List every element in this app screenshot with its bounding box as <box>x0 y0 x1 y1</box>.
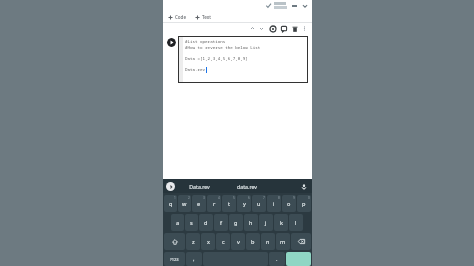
staticText: 7 <box>263 196 265 200</box>
staticText: 8 <box>278 196 280 200</box>
button[interactable]: 0 <box>297 195 311 212</box>
staticText: a <box>176 219 180 227</box>
staticText: y <box>243 200 246 208</box>
staticText: g <box>234 219 238 227</box>
button[interactable]: l <box>289 214 303 231</box>
button[interactable]: a <box>171 214 184 231</box>
button[interactable]: 9 <box>282 195 296 212</box>
button[interactable]: Delete cell <box>290 24 299 33</box>
button[interactable]: Text <box>194 13 212 21</box>
staticText: data.rev <box>237 183 257 190</box>
button[interactable]: f <box>214 214 228 231</box>
staticText: z <box>192 238 195 246</box>
staticText: 1 <box>174 196 176 200</box>
button[interactable]: v <box>231 233 245 250</box>
button[interactable]: Voice input <box>298 181 309 192</box>
staticText: v <box>237 238 240 246</box>
button[interactable]: Move cell down <box>257 24 266 33</box>
staticText: k <box>280 219 283 227</box>
button[interactable]: m <box>276 233 290 250</box>
staticText: Text <box>202 14 211 20</box>
staticText: s <box>190 219 193 227</box>
staticText: j <box>265 219 267 227</box>
button[interactable]: Enter <box>286 252 311 266</box>
button[interactable]: Backspace <box>291 233 311 250</box>
button[interactable]: 2 <box>178 195 191 212</box>
staticText: 2 <box>188 196 190 200</box>
button[interactable]: 8 <box>267 195 281 212</box>
staticText: w <box>182 200 187 208</box>
button[interactable]: 3 <box>192 195 206 212</box>
button[interactable]: Shift <box>164 233 185 250</box>
staticText: 0 <box>308 196 310 200</box>
button[interactable]: 7 <box>252 195 266 212</box>
button[interactable]: Data.rev <box>175 179 223 193</box>
staticText: t <box>228 200 231 208</box>
button[interactable]: 5 <box>222 195 236 212</box>
staticText: o <box>287 200 291 208</box>
staticText: r <box>213 200 216 208</box>
staticText: Data =[1,2,3,4,5,6,7,8,9] <box>185 56 248 62</box>
button[interactable]: Comment <box>279 24 288 33</box>
button[interactable]: 4 <box>207 195 221 212</box>
staticText: f <box>220 219 222 227</box>
staticText: u <box>257 200 261 208</box>
staticText: 3 <box>203 196 205 200</box>
button[interactable]: d <box>199 214 213 231</box>
staticText: e <box>197 200 201 208</box>
staticText: 6 <box>248 196 250 200</box>
staticText: 4 <box>218 196 220 200</box>
button[interactable]: Code <box>167 13 187 21</box>
staticText: 5 <box>233 196 235 200</box>
staticText: p <box>302 200 306 208</box>
staticText: #How to reverse the below List <box>185 45 261 51</box>
button[interactable]: #List operations <box>178 36 308 83</box>
staticText: Data.rev <box>185 67 206 73</box>
staticText: m <box>280 238 286 246</box>
staticText: q <box>169 200 173 208</box>
button[interactable]: Expand suggestions <box>166 182 175 191</box>
button[interactable]: ?123 <box>164 252 185 266</box>
button[interactable]: s <box>185 214 198 231</box>
button[interactable]: , <box>186 252 202 266</box>
staticText: i <box>273 200 275 208</box>
staticText: . <box>276 255 278 263</box>
button[interactable]: c <box>216 233 230 250</box>
staticText: 9 <box>293 196 295 200</box>
button[interactable]: 1 <box>164 195 177 212</box>
button[interactable]: n <box>261 233 275 250</box>
staticText: ?123 <box>170 257 179 262</box>
button[interactable]: b <box>246 233 260 250</box>
staticText: d <box>204 219 208 227</box>
button[interactable]: 6 <box>237 195 251 212</box>
button[interactable]: j <box>259 214 273 231</box>
button[interactable]: data.rev <box>223 179 271 193</box>
button[interactable]: g <box>229 214 243 231</box>
staticText: c <box>222 238 225 246</box>
staticText: l <box>295 219 297 227</box>
staticText: n <box>266 238 270 246</box>
button[interactable]: Link to cell <box>268 24 277 33</box>
button[interactable]: h <box>244 214 258 231</box>
staticText: , <box>193 255 195 263</box>
button[interactable]: k <box>274 214 288 231</box>
staticText: b <box>251 238 255 246</box>
staticText: Code <box>175 14 186 20</box>
staticText: h <box>249 219 253 227</box>
button[interactable]: Move cell up <box>248 24 257 33</box>
button[interactable]: Run cell <box>167 38 176 47</box>
staticText: Data.rev <box>189 183 210 190</box>
staticText: #List operations <box>185 39 226 45</box>
button[interactable]: z <box>186 233 200 250</box>
button[interactable]: More options <box>300 24 309 33</box>
staticText: x <box>207 238 210 246</box>
button[interactable]: x <box>201 233 215 250</box>
button[interactable]: . <box>269 252 285 266</box>
